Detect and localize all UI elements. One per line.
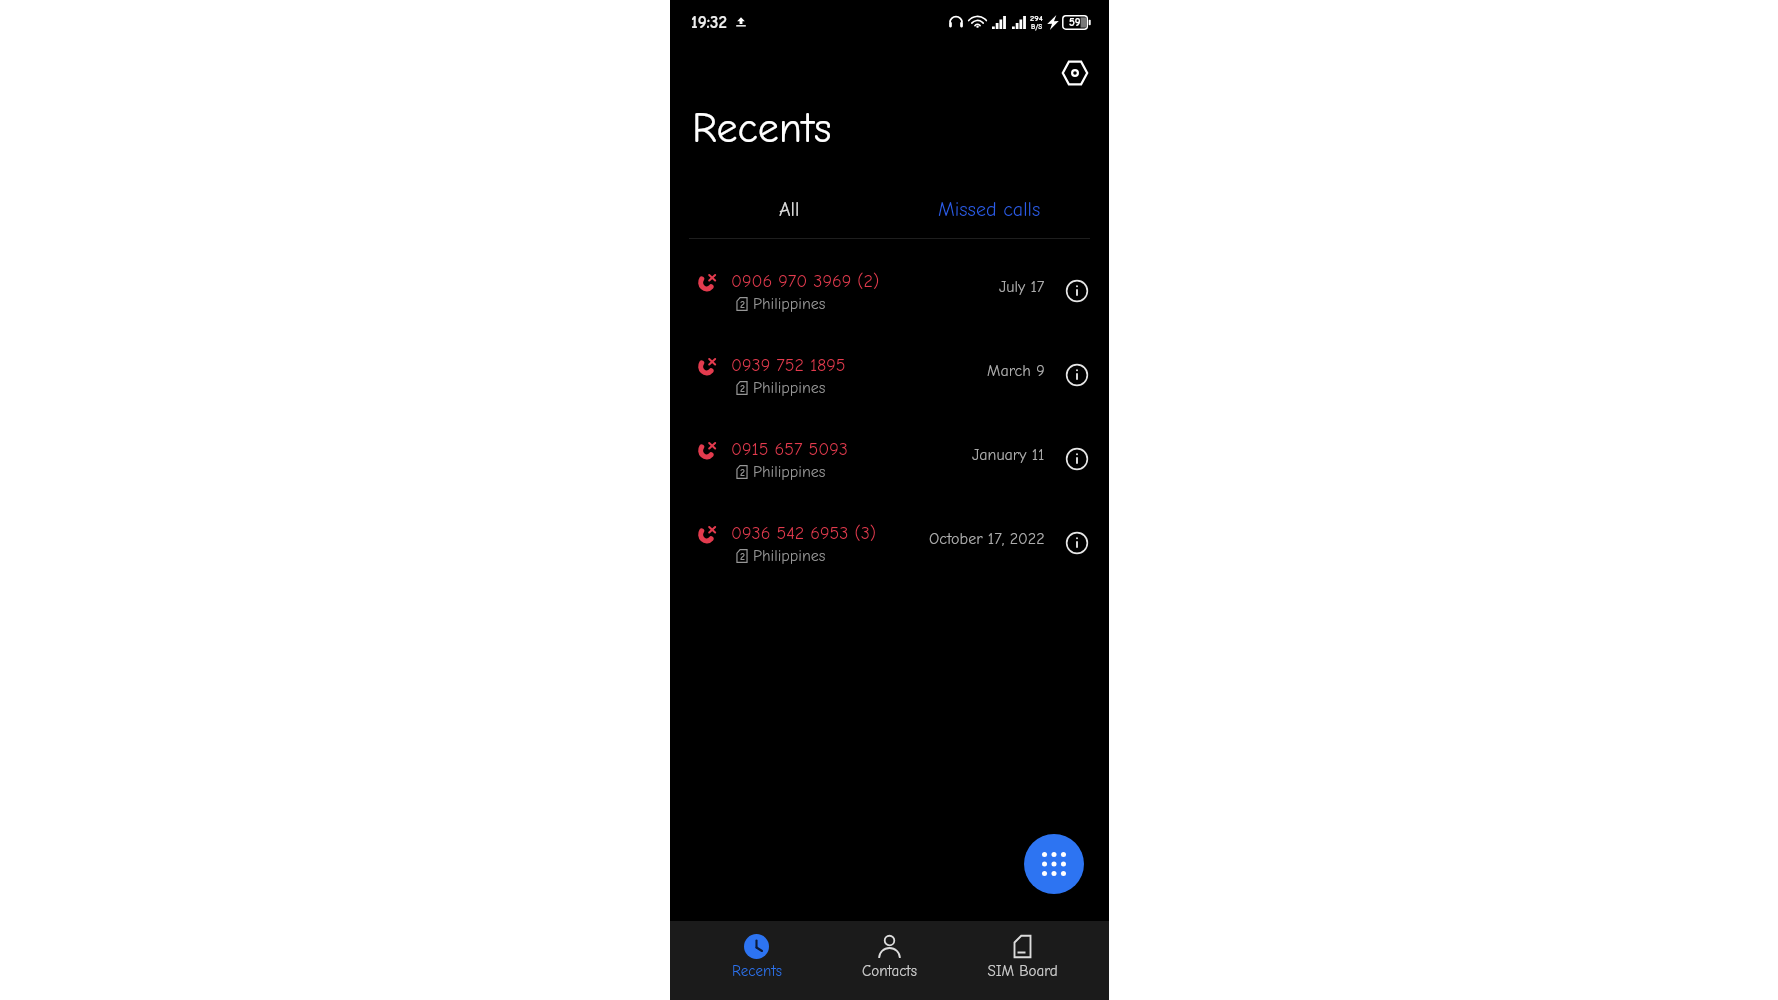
button[interactable]: Call details xyxy=(1063,445,1091,473)
staticText: March 9 xyxy=(987,362,1045,380)
staticText: July 17 xyxy=(999,278,1045,296)
staticText: Philippines xyxy=(753,379,826,397)
button[interactable]: 0906 970 3969 (2) xyxy=(670,249,1109,333)
staticText: 0906 970 3969 (2) xyxy=(731,271,880,292)
staticText: 2 xyxy=(740,383,745,395)
button[interactable]: 0915 657 5093 xyxy=(670,417,1109,501)
button[interactable]: Call details xyxy=(1063,277,1091,305)
staticText: All xyxy=(779,198,800,221)
staticText: Philippines xyxy=(753,547,826,565)
staticText: 2 xyxy=(740,299,745,311)
staticText: 59 xyxy=(1069,16,1081,29)
staticText: Recents xyxy=(732,962,782,979)
staticText: SIM Board xyxy=(987,962,1058,979)
button[interactable]: Dialpad xyxy=(1024,834,1084,894)
staticText: Contacts xyxy=(862,962,917,979)
staticText: 19:32 xyxy=(691,13,727,33)
staticText: 294 xyxy=(1030,13,1043,23)
button[interactable]: SIM Board xyxy=(956,917,1089,996)
staticText: 2 xyxy=(740,551,745,563)
staticText: October 17, 2022 xyxy=(929,530,1045,548)
staticText: Recents xyxy=(692,104,832,152)
staticText: Missed calls xyxy=(938,198,1041,221)
button[interactable]: Missed calls xyxy=(889,192,1089,226)
button[interactable]: All xyxy=(690,192,889,226)
button[interactable]: Call details xyxy=(1063,361,1091,389)
staticText: 0915 657 5093 xyxy=(731,439,848,460)
button[interactable]: Contacts xyxy=(823,917,956,996)
button[interactable]: 0936 542 6953 (3) xyxy=(670,501,1109,585)
button[interactable]: Recents xyxy=(690,917,823,996)
staticText: January 11 xyxy=(972,446,1045,464)
staticText: 2 xyxy=(740,467,745,479)
button[interactable]: Call details xyxy=(1063,529,1091,557)
staticText: 0939 752 1895 xyxy=(731,355,846,376)
staticText: B/S xyxy=(1031,23,1043,31)
staticText: 0936 542 6953 (3) xyxy=(731,523,877,544)
staticText: Philippines xyxy=(753,295,826,313)
button[interactable]: Settings xyxy=(1055,53,1095,93)
staticText: Philippines xyxy=(753,463,826,481)
button[interactable]: 0939 752 1895 xyxy=(670,333,1109,417)
